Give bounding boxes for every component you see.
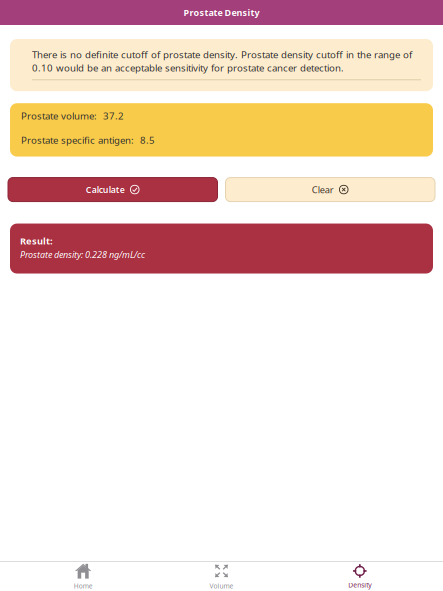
staticText: Prostate volume: 37.2 [21,109,124,122]
staticText: Calculate [86,184,125,196]
button[interactable]: Home [14,562,152,591]
staticText: Density [348,580,371,590]
button[interactable]: Volume [152,562,291,591]
staticText: Home [74,581,93,591]
staticText: Clear [312,183,334,196]
button[interactable]: Density [291,562,429,591]
button[interactable]: Clear [225,178,435,202]
staticText: Result: [20,235,53,247]
staticText: There is no definite cutoff of prostate … [32,48,412,74]
staticText: Prostate specific antigen: 8.5 [21,133,155,147]
staticText: Prostate density: 0.228 ng/mL/cc [20,248,145,261]
staticText: Prostate Density [183,6,259,19]
staticText: Volume [209,581,233,591]
button[interactable]: Calculate [8,178,217,202]
